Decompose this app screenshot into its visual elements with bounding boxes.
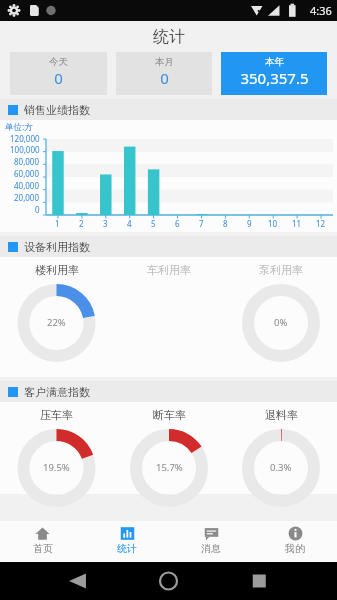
staticText: 1 <box>55 218 60 229</box>
button[interactable]: 消息 <box>169 521 253 562</box>
staticText: 0 <box>160 68 169 88</box>
staticText: 350,357.5 <box>240 68 309 88</box>
staticText: 11 <box>292 218 302 229</box>
staticText: 19.5% <box>43 461 70 474</box>
staticText: 单位:方 <box>5 121 33 133</box>
staticText: 0.3% <box>270 461 292 474</box>
staticText: 销售业绩指数 <box>24 103 90 117</box>
staticText: 本年 <box>265 56 284 68</box>
staticText: 客户满意指数 <box>24 385 90 399</box>
staticText: 楼利用率 <box>35 263 79 277</box>
staticText: 消息 <box>201 542 221 555</box>
staticText: 0% <box>274 316 288 329</box>
button[interactable]: 0.3% <box>225 428 337 494</box>
staticText: 12 <box>316 218 326 229</box>
staticText: 20,000 <box>14 192 40 203</box>
staticText: 3 <box>103 218 108 229</box>
staticText: 首页 <box>33 542 53 555</box>
staticText: 断车率 <box>153 408 186 422</box>
staticText: 统计 <box>153 27 185 47</box>
staticText: 9 <box>247 218 252 229</box>
staticText: 6 <box>175 218 180 229</box>
button[interactable]: 本年 <box>221 52 327 95</box>
button[interactable]: 首页 <box>0 521 85 562</box>
staticText: 设备利用指数 <box>24 240 90 254</box>
staticText: 15.7% <box>156 461 183 474</box>
button[interactable]: 22% <box>0 283 113 377</box>
button[interactable]: 统计 <box>85 521 169 562</box>
staticText: 压车率 <box>40 408 73 422</box>
staticText: 80,000 <box>14 156 40 167</box>
button[interactable]: 我的 <box>253 521 337 562</box>
staticText: 40,000 <box>14 180 40 191</box>
staticText: 60,000 <box>14 168 40 179</box>
staticText: 100,000 <box>10 144 40 155</box>
staticText: 10 <box>268 218 278 229</box>
staticText: 我的 <box>285 542 305 555</box>
staticText: 本月 <box>155 56 174 68</box>
staticText: 8 <box>223 218 228 229</box>
staticText: 今天 <box>49 56 68 68</box>
staticText: 0 <box>54 68 63 88</box>
staticText: 车利用率 <box>147 263 191 277</box>
staticText: 4 <box>127 218 132 229</box>
staticText: 22% <box>47 316 66 329</box>
staticText: 2 <box>79 218 84 229</box>
button[interactable]: 今天 <box>10 52 107 95</box>
staticText: 统计 <box>117 542 137 555</box>
staticText: 5 <box>151 218 156 229</box>
staticText: 7 <box>199 218 204 229</box>
button[interactable]: 15.7% <box>113 428 225 494</box>
button[interactable]: 19.5% <box>0 428 113 494</box>
staticText: 120,000 <box>10 133 40 144</box>
staticText: 退料率 <box>265 408 298 422</box>
button[interactable]: 本月 <box>116 52 212 95</box>
button[interactable]: 0% <box>225 283 337 377</box>
staticText: 4:36 <box>310 3 332 18</box>
staticText: 泵利用率 <box>259 263 303 277</box>
staticText: 0 <box>35 204 40 215</box>
